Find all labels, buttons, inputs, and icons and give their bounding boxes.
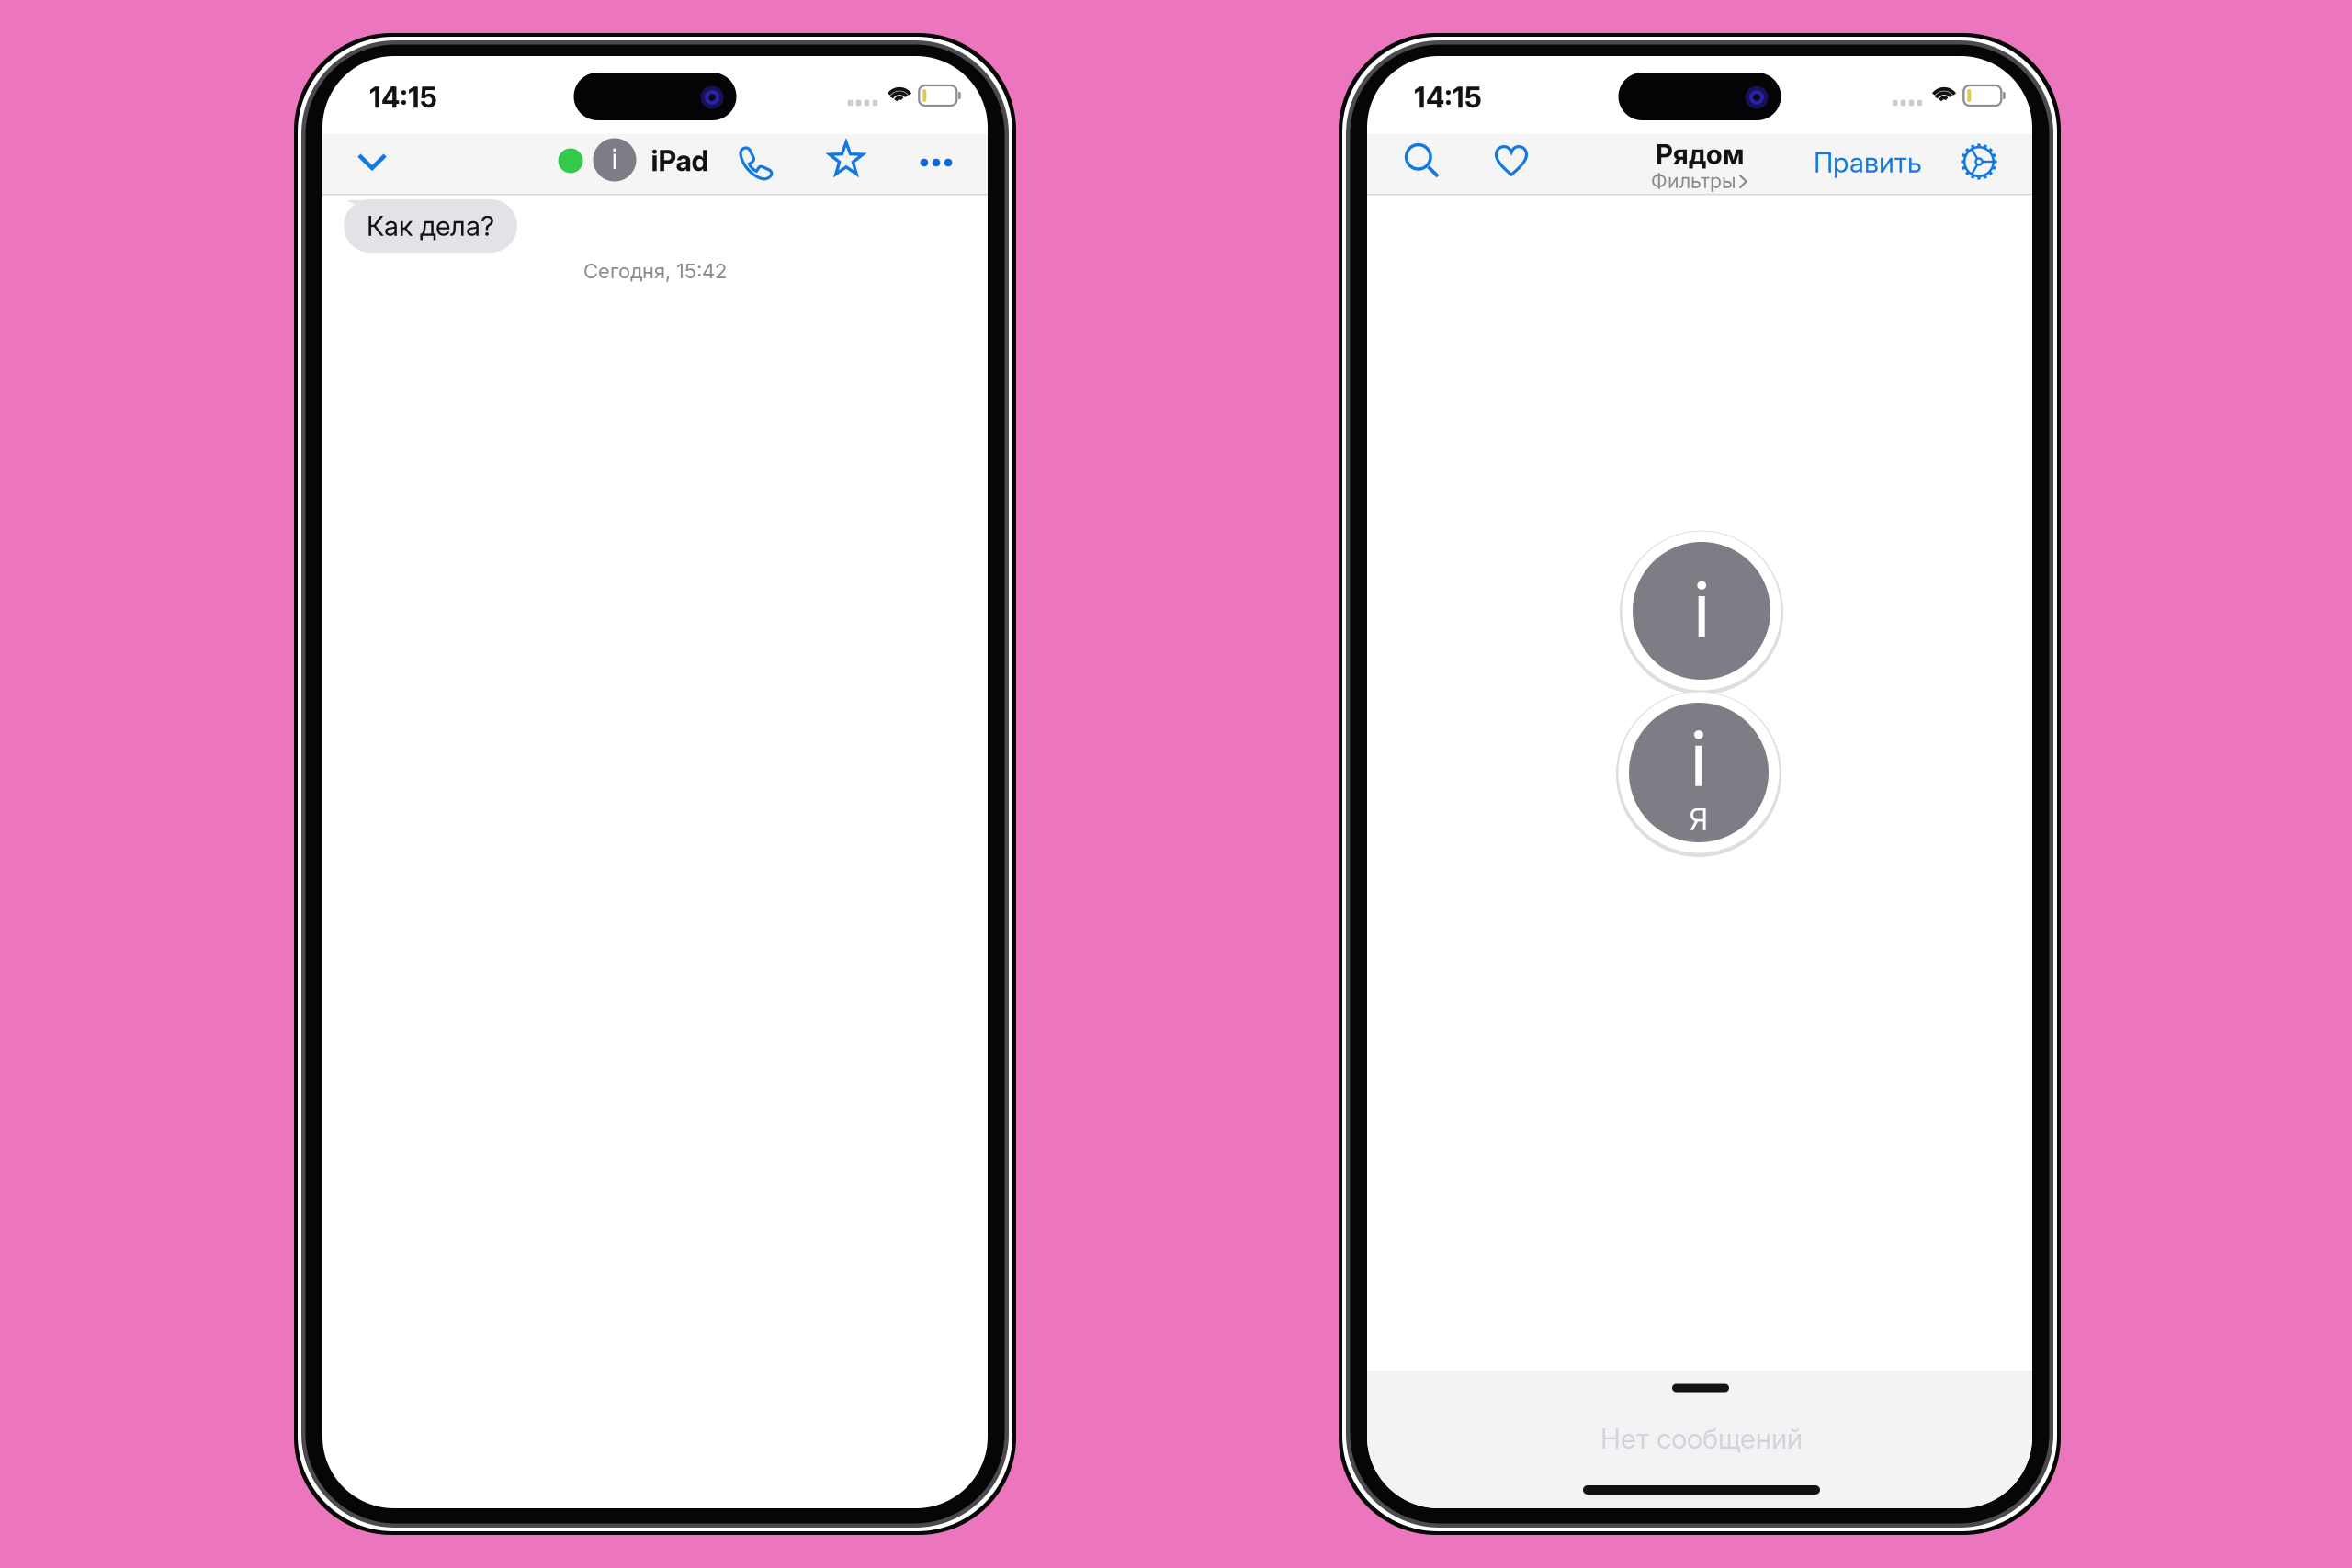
button[interactable]: Править: [1790, 136, 1946, 189]
button[interactable]: Favourite: [813, 130, 879, 189]
staticText: Фильтры: [1651, 169, 1736, 193]
staticText: Я: [1689, 801, 1708, 837]
staticText: 14:15: [369, 80, 437, 114]
staticText: Править: [1814, 146, 1922, 179]
staticText: i: [1690, 714, 1708, 804]
staticText: i: [1693, 565, 1710, 654]
staticText: iPad: [651, 144, 709, 178]
staticText: Нет сообщений: [1600, 1422, 1803, 1455]
button[interactable]: Settings: [1949, 132, 2009, 191]
button[interactable]: Hide details: [333, 132, 412, 191]
staticText: i: [611, 141, 618, 176]
staticText: Сегодня, 15:42: [583, 259, 727, 283]
button[interactable]: Favourites: [1478, 131, 1544, 190]
button[interactable]: More options: [903, 133, 969, 192]
button[interactable]: Search: [1390, 132, 1456, 191]
staticText: 14:15: [1414, 80, 1482, 114]
button[interactable]: Рядом: [1571, 136, 1828, 197]
staticText: Как дела?: [367, 210, 494, 242]
staticText: Рядом: [1656, 138, 1744, 171]
button[interactable]: Call: [722, 134, 788, 193]
